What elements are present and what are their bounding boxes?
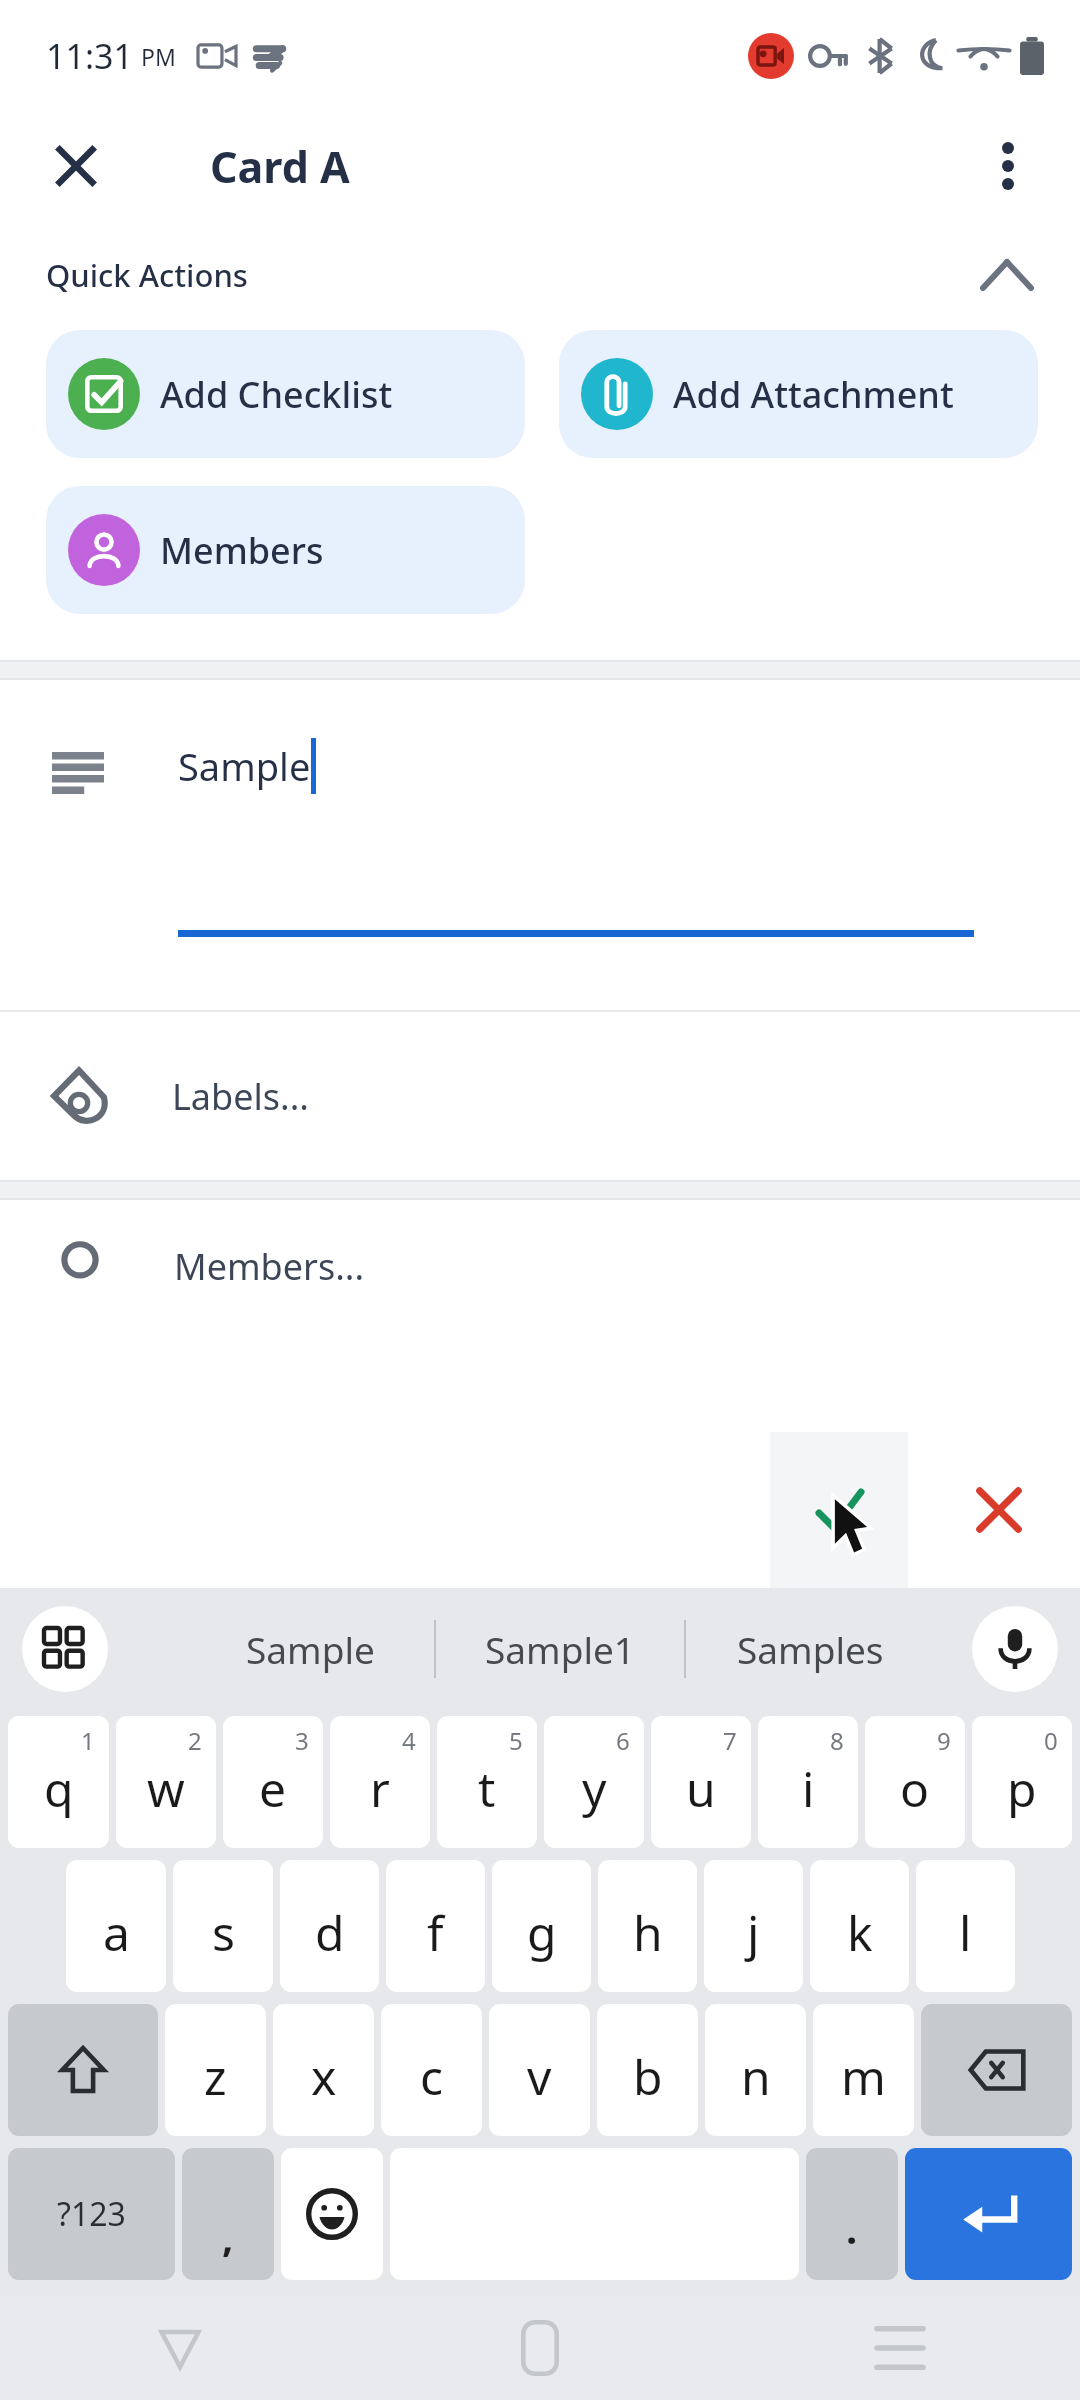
staticText: Labels... bbox=[172, 1072, 309, 1121]
staticText: ?123 bbox=[57, 2192, 126, 2236]
staticText: 2 bbox=[188, 1724, 202, 1757]
staticText: v bbox=[527, 2044, 552, 2109]
staticText: 1 bbox=[81, 1724, 95, 1757]
staticText: 7 bbox=[723, 1724, 737, 1757]
staticText: t bbox=[478, 1756, 496, 1821]
button[interactable]: Add Checklist bbox=[46, 330, 525, 458]
button[interactable]: ?123 bbox=[8, 2148, 175, 2280]
button[interactable]: Cancel bbox=[944, 1455, 1054, 1565]
button[interactable]: Add Attachment bbox=[559, 330, 1038, 458]
staticText: i bbox=[802, 1756, 815, 1821]
staticText: g bbox=[527, 1900, 557, 1965]
button[interactable]: h bbox=[598, 1860, 697, 1992]
button[interactable]: Quick Actions bbox=[0, 220, 1080, 330]
staticText: 6 bbox=[616, 1724, 630, 1757]
staticText: 3 bbox=[295, 1724, 309, 1757]
button[interactable]: More options bbox=[966, 124, 1050, 208]
staticText: m bbox=[841, 2044, 886, 2109]
staticText: n bbox=[741, 2044, 771, 2109]
staticText: Sample bbox=[178, 740, 311, 792]
button[interactable]: Close bbox=[36, 126, 116, 206]
button[interactable]: q bbox=[8, 1716, 109, 1848]
button[interactable]: w bbox=[116, 1716, 216, 1848]
button[interactable]: Sample bbox=[0, 680, 1080, 1010]
staticText: a bbox=[103, 1900, 130, 1965]
button[interactable]: Sample1 bbox=[436, 1624, 684, 1674]
button[interactable]: x bbox=[273, 2004, 374, 2136]
button[interactable]: Confirm bbox=[770, 1432, 908, 1588]
button[interactable]: f bbox=[386, 1860, 485, 1992]
button[interactable]: Enter bbox=[905, 2148, 1072, 2280]
button[interactable]: Emoji bbox=[281, 2148, 383, 2280]
staticText: Members... bbox=[174, 1242, 365, 1291]
button[interactable]: a bbox=[66, 1860, 166, 1992]
button[interactable]: d bbox=[280, 1860, 379, 1992]
button[interactable]: r bbox=[330, 1716, 430, 1848]
staticText: 5 bbox=[509, 1724, 523, 1757]
staticText: 8 bbox=[830, 1724, 844, 1757]
staticText: , bbox=[222, 2209, 234, 2263]
button[interactable]: Backspace bbox=[921, 2004, 1072, 2136]
staticText: Members bbox=[160, 526, 324, 575]
staticText: b bbox=[633, 2044, 663, 2109]
staticText: r bbox=[370, 1756, 390, 1821]
button[interactable]: j bbox=[704, 1860, 803, 1992]
button[interactable]: y bbox=[544, 1716, 644, 1848]
staticText: Add Attachment bbox=[673, 370, 954, 419]
staticText: 9 bbox=[937, 1724, 951, 1757]
button[interactable]: u bbox=[651, 1716, 751, 1848]
staticText: 4 bbox=[402, 1724, 416, 1757]
staticText: w bbox=[147, 1756, 185, 1821]
button[interactable]: Sample bbox=[186, 1624, 434, 1674]
button[interactable]: k bbox=[810, 1860, 909, 1992]
staticText: Card A bbox=[210, 137, 350, 196]
button[interactable]: , bbox=[182, 2148, 274, 2280]
staticText: l bbox=[959, 1900, 972, 1965]
button[interactable]: Members... bbox=[0, 1200, 1080, 1320]
staticText: Add Checklist bbox=[160, 370, 393, 419]
button[interactable]: Home bbox=[360, 2296, 720, 2400]
staticText: q bbox=[44, 1756, 74, 1821]
staticText: 0 bbox=[1044, 1724, 1058, 1757]
staticText: j bbox=[747, 1900, 760, 1965]
staticText: Sample1 bbox=[485, 1624, 635, 1674]
button[interactable]: Recent apps bbox=[720, 2296, 1080, 2400]
staticText: c bbox=[420, 2044, 444, 2109]
staticText: Quick Actions bbox=[46, 254, 248, 296]
staticText: x bbox=[311, 2044, 337, 2109]
button[interactable]: t bbox=[437, 1716, 537, 1848]
button[interactable]: . bbox=[806, 2148, 898, 2280]
button[interactable]: z bbox=[165, 2004, 266, 2136]
button[interactable]: l bbox=[916, 1860, 1015, 1992]
button[interactable]: c bbox=[381, 2004, 482, 2136]
staticText: Sample bbox=[246, 1624, 375, 1674]
button[interactable]: p bbox=[972, 1716, 1072, 1848]
button[interactable]: g bbox=[492, 1860, 591, 1992]
button[interactable]: Labels... bbox=[0, 1012, 1080, 1180]
button[interactable]: b bbox=[597, 2004, 698, 2136]
button[interactable]: Back bbox=[0, 2296, 360, 2400]
staticText: . bbox=[846, 2201, 858, 2255]
button[interactable]: Samples bbox=[686, 1624, 934, 1674]
button[interactable]: o bbox=[865, 1716, 965, 1848]
staticText: Samples bbox=[737, 1624, 884, 1674]
staticText: o bbox=[900, 1756, 930, 1821]
button[interactable]: Keyboard menu bbox=[22, 1606, 108, 1692]
button[interactable]: v bbox=[489, 2004, 590, 2136]
button[interactable]: Voice input bbox=[972, 1606, 1058, 1692]
staticText: p bbox=[1007, 1756, 1037, 1821]
staticText: h bbox=[633, 1900, 663, 1965]
other: Collapse bbox=[968, 236, 1046, 314]
staticText: f bbox=[427, 1900, 444, 1965]
button[interactable]: m bbox=[813, 2004, 914, 2136]
staticText: k bbox=[847, 1900, 873, 1965]
staticText: s bbox=[212, 1900, 235, 1965]
button[interactable]: Shift bbox=[8, 2004, 158, 2136]
button[interactable]: e bbox=[223, 1716, 323, 1848]
button[interactable]: Members bbox=[46, 486, 525, 614]
button[interactable]: n bbox=[705, 2004, 806, 2136]
staticText: e bbox=[259, 1756, 287, 1821]
button[interactable]: i bbox=[758, 1716, 858, 1848]
button[interactable]: s bbox=[173, 1860, 273, 1992]
